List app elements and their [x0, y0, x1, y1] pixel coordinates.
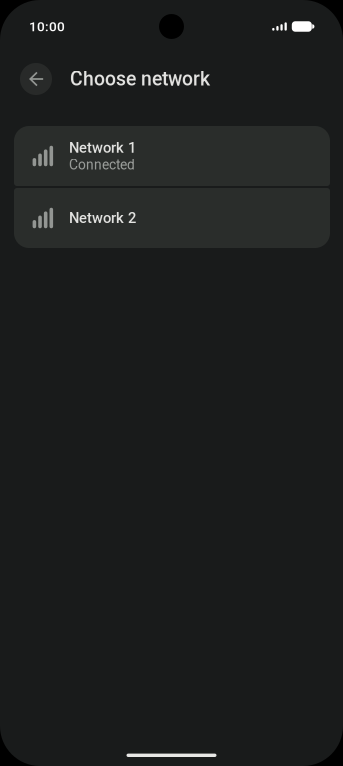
staticText: Network 2	[69, 209, 136, 227]
staticText: Choose network	[70, 68, 210, 90]
staticText: Connected	[69, 157, 135, 173]
staticText: 10:00	[29, 18, 65, 34]
staticText: Network 1	[69, 139, 136, 156]
button[interactable]: Network 2	[14, 188, 330, 248]
button[interactable]: Network 1	[14, 126, 330, 186]
button[interactable]: Back	[20, 63, 52, 95]
